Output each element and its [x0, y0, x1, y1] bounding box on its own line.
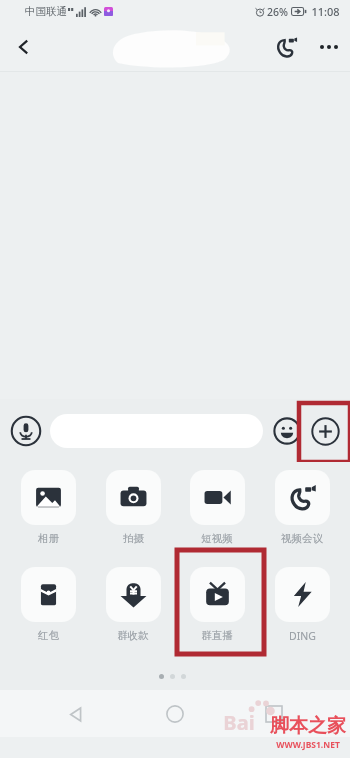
staticText: 26%	[267, 5, 288, 19]
button[interactable]: Recent apps	[251, 691, 297, 737]
staticText: 中国联通	[25, 5, 67, 18]
staticText: 脚本之家	[270, 714, 346, 738]
button[interactable]	[50, 414, 263, 448]
staticText: 短视频	[201, 532, 233, 545]
button[interactable]: Voice message	[9, 414, 43, 448]
button[interactable]: More options	[308, 26, 350, 68]
staticText: 红包	[38, 629, 59, 642]
button[interactable]: 群直播	[180, 567, 254, 642]
staticText: 相册	[38, 532, 59, 545]
button[interactable]: Back	[0, 23, 48, 71]
staticText: WWW.JBS1.NET	[276, 739, 340, 751]
button[interactable]: Back	[53, 691, 99, 737]
staticText: 拍摄	[123, 532, 144, 545]
button[interactable]: Home	[152, 691, 198, 737]
button[interactable]: 群收款	[96, 567, 170, 642]
staticText: 群收款	[117, 629, 149, 642]
staticText: 11:08	[311, 4, 340, 19]
button[interactable]: 短视频	[180, 470, 254, 545]
button[interactable]: 红包	[11, 567, 85, 642]
staticText: 视频会议	[281, 532, 323, 545]
staticText: 群直播	[201, 629, 233, 642]
staticText: Bai	[223, 709, 255, 736]
button[interactable]: 拍摄	[96, 470, 170, 545]
button[interactable]: Emoji	[271, 415, 303, 447]
button[interactable]: DING	[265, 567, 339, 643]
staticText: DING	[289, 629, 316, 643]
button[interactable]: Video call	[264, 25, 308, 69]
button[interactable]: 视频会议	[265, 470, 339, 545]
button[interactable]: More actions	[306, 412, 344, 450]
button[interactable]: 相册	[11, 470, 85, 545]
